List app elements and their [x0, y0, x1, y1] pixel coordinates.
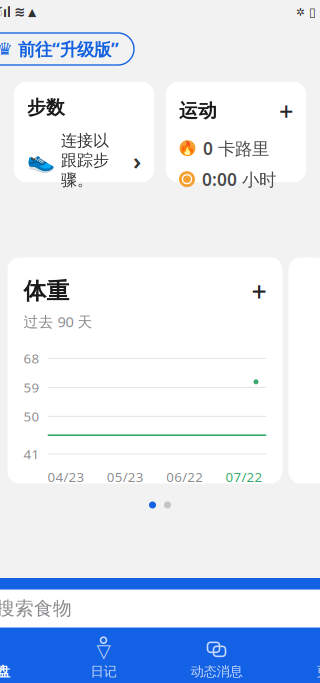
staticText: ✲	[296, 6, 305, 18]
staticText: 0 卡路里	[203, 137, 269, 160]
staticText: 更多	[316, 663, 320, 680]
button[interactable]: 更多	[273, 639, 320, 679]
staticText: 41	[23, 445, 39, 463]
staticText: ▯	[309, 5, 316, 19]
button[interactable]: 运动	[166, 82, 306, 182]
staticText: 68	[23, 349, 39, 367]
staticText: 前往“升级版”	[18, 37, 119, 60]
staticText: +	[251, 273, 266, 309]
staticText: 50	[23, 407, 39, 425]
staticText: ≋	[14, 4, 25, 19]
staticText: ▽	[96, 640, 110, 661]
button[interactable]: 动态消息	[160, 639, 273, 679]
staticText: 体重	[23, 277, 69, 305]
staticText: 06/22	[166, 468, 203, 486]
staticText: 日记	[90, 663, 116, 680]
button[interactable]: 🔍	[0, 589, 320, 627]
staticText: 动态消息	[190, 663, 242, 680]
staticText: ▲	[28, 6, 36, 18]
button[interactable]: 体重	[7, 257, 282, 483]
staticText: ›	[133, 144, 141, 176]
staticText: ᷉ıl	[0, 3, 11, 21]
staticText: 连接以跟踪步骤。	[61, 131, 109, 190]
button[interactable]: ▽	[47, 639, 160, 679]
staticText: 👟	[27, 147, 55, 173]
button[interactable]: 仪表盘	[0, 639, 47, 679]
button[interactable]: 步数	[14, 82, 154, 182]
staticText: 05/23	[107, 468, 144, 486]
staticText: ♛	[0, 39, 13, 59]
button[interactable]: ♛	[0, 33, 134, 65]
staticText: 过去 90 天	[23, 312, 92, 331]
staticText: 运动	[179, 99, 217, 122]
staticText: 仪表盘	[0, 663, 10, 680]
staticText: +	[279, 94, 293, 128]
staticText: 07/22	[225, 468, 262, 486]
staticText: 04/23	[47, 468, 84, 486]
staticText: 🔥	[179, 140, 196, 156]
staticText: 0:00 小时	[202, 168, 276, 191]
staticText: 59	[23, 378, 39, 396]
staticText: 步数	[27, 96, 65, 119]
staticText: 搜索食物	[0, 597, 72, 620]
